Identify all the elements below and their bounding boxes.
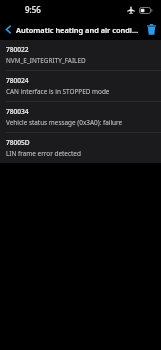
staticText: CAN interface is in STOPPED mode	[6, 87, 110, 96]
staticText: NVM_E_INTEGRITY_FAILED	[6, 56, 86, 65]
button[interactable]: 78005D	[0, 133, 161, 163]
button[interactable]: Back	[0, 19, 16, 40]
staticText: 780024	[6, 76, 29, 85]
staticText: Vehicle status message (0x3A0): failure	[6, 118, 123, 127]
staticText: 9:56	[25, 4, 41, 15]
staticText: 780022	[6, 45, 29, 54]
staticText: 780034	[6, 107, 29, 116]
button[interactable]: 780022	[0, 40, 161, 70]
staticText: Automatic heating and air conditioning	[16, 25, 141, 35]
button[interactable]: Delete	[141, 19, 161, 40]
button[interactable]: 780024	[0, 71, 161, 101]
staticText: LIN frame error detected	[6, 149, 81, 158]
staticText: 78005D	[6, 138, 30, 147]
button[interactable]: 780034	[0, 102, 161, 132]
